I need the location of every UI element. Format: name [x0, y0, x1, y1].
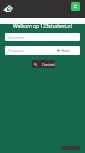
button[interactable]: Contact — [32, 60, 55, 68]
staticText: Welkom op 123student.nl — [13, 23, 72, 30]
staticText: Contact — [42, 62, 55, 67]
staticText: Password — [8, 48, 24, 53]
button[interactable]: Show — [57, 48, 70, 53]
staticText: Show — [61, 48, 70, 53]
button[interactable]: Password — [5, 46, 80, 55]
button[interactable]: Username — [5, 33, 80, 41]
staticText: Username — [8, 35, 25, 40]
button[interactable]: Open menu — [71, 2, 80, 11]
button[interactable]: 123student home — [3, 5, 13, 12]
